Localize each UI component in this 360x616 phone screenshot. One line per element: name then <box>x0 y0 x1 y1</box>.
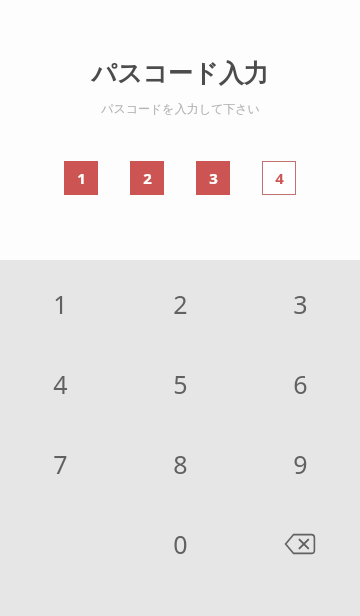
button[interactable]: 1 <box>0 264 120 344</box>
staticText: 6 <box>293 367 308 401</box>
staticText: 9 <box>293 447 308 481</box>
button[interactable]: 3 <box>196 161 230 195</box>
staticText: 2 <box>143 168 152 188</box>
staticText: 1 <box>53 287 68 321</box>
staticText: 0 <box>173 527 188 561</box>
staticText: 3 <box>209 168 218 188</box>
button[interactable]: 8 <box>120 424 240 504</box>
staticText: パスコード入力 <box>91 58 269 89</box>
button[interactable]: 2 <box>120 264 240 344</box>
button[interactable]: 1 <box>64 161 98 195</box>
button[interactable]: 4 <box>262 161 296 195</box>
button[interactable]: 9 <box>240 424 360 504</box>
staticText: パスコードを入力して下さい <box>101 101 260 116</box>
staticText: 3 <box>293 287 308 321</box>
staticText: 7 <box>53 447 68 481</box>
button[interactable]: 7 <box>0 424 120 504</box>
staticText: 1 <box>77 168 86 188</box>
staticText: 5 <box>173 367 188 401</box>
staticText: 2 <box>173 287 188 321</box>
staticText: 4 <box>275 168 284 188</box>
staticText: 8 <box>173 447 188 481</box>
button[interactable]: 6 <box>240 344 360 424</box>
button[interactable]: 2 <box>130 161 164 195</box>
button[interactable]: 0 <box>120 504 240 584</box>
staticText: 4 <box>53 367 68 401</box>
button[interactable]: 4 <box>0 344 120 424</box>
button[interactable]: Backspace <box>240 504 360 584</box>
button[interactable]: 5 <box>120 344 240 424</box>
button[interactable]: 3 <box>240 264 360 344</box>
